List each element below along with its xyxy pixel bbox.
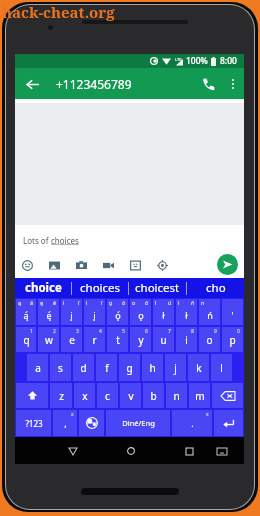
button[interactable]: a [27, 354, 48, 381]
staticText: n [201, 299, 205, 306]
staticText: ą́ [23, 309, 29, 321]
button[interactable]: l [211, 354, 232, 381]
button[interactable]: 8 [176, 327, 197, 352]
button[interactable]: ' [222, 299, 243, 325]
staticText: cho [206, 280, 226, 296]
button[interactable]: Back [64, 442, 82, 460]
button[interactable]: 9 [199, 327, 220, 352]
button[interactable]: 6 [130, 327, 151, 352]
button[interactable]: Enter [214, 410, 243, 436]
button[interactable]: choice [15, 278, 71, 298]
button[interactable]: 1 [16, 327, 36, 352]
staticText: ę́ [46, 309, 52, 321]
button[interactable]: 7 [153, 327, 174, 352]
staticText: p [229, 333, 236, 347]
button[interactable]: Shift [16, 383, 48, 408]
staticText: 7 [168, 328, 171, 335]
button[interactable]: n [166, 383, 187, 408]
staticText: j [174, 361, 177, 375]
button[interactable]: z [50, 383, 72, 408]
staticText: r [92, 333, 97, 347]
button[interactable]: Recent apps [180, 442, 198, 460]
button[interactable]: v [120, 383, 141, 408]
button[interactable]: d [73, 354, 94, 381]
button[interactable]: More options [222, 73, 244, 95]
button[interactable]: choices [72, 278, 128, 298]
button[interactable]: ?123 [16, 410, 51, 436]
button[interactable]: Home [122, 442, 140, 460]
staticText: o [132, 299, 136, 306]
button[interactable]: Location [152, 255, 172, 275]
button[interactable]: choicest [129, 278, 186, 298]
staticText: 9 [214, 328, 217, 335]
button[interactable]: x [53, 410, 77, 436]
button[interactable]: Stickers [125, 255, 145, 275]
staticText: í [78, 299, 80, 306]
staticText: l [220, 361, 223, 375]
staticText: b [150, 389, 157, 403]
button[interactable]: Backspace [212, 383, 243, 408]
button[interactable]: Change language [79, 410, 104, 436]
button[interactable]: Gallery [44, 255, 64, 275]
button[interactable]: x [172, 410, 212, 436]
staticText: Lots of [23, 235, 51, 246]
button[interactable]: ę [38, 299, 59, 325]
button[interactable]: s [50, 354, 71, 381]
button[interactable]: l [153, 299, 174, 325]
button[interactable]: k [188, 354, 209, 381]
button[interactable]: n [199, 299, 220, 325]
staticText: u [160, 333, 167, 347]
button[interactable]: Camera [71, 255, 91, 275]
staticText: +1123456789 [56, 76, 132, 92]
staticText: 0 [237, 328, 240, 335]
staticText: l [178, 299, 180, 306]
staticText: m [195, 389, 205, 403]
staticText: choices [51, 235, 79, 246]
staticText: d [80, 361, 87, 375]
staticText: í [101, 299, 103, 306]
button[interactable]: 5 [107, 327, 128, 352]
button[interactable]: c [97, 383, 118, 408]
button[interactable]: l [176, 299, 197, 325]
staticText: ó [122, 299, 126, 306]
button[interactable]: i [61, 299, 82, 325]
button[interactable]: ą [16, 299, 36, 325]
staticText: 4 [99, 328, 102, 335]
button[interactable]: b [143, 383, 164, 408]
button[interactable]: Send [217, 254, 238, 275]
button[interactable]: Video [98, 255, 118, 275]
button[interactable]: i [84, 299, 105, 325]
staticText: f [105, 361, 109, 375]
staticText: l [155, 299, 157, 306]
button[interactable]: m [189, 383, 210, 408]
button[interactable]: g [119, 354, 140, 381]
button[interactable]: 0 [222, 327, 243, 352]
button[interactable]: cho [187, 278, 244, 298]
staticText: z [59, 389, 64, 403]
button[interactable]: Call [195, 71, 221, 97]
button[interactable]: Hide keyboard [213, 442, 231, 460]
button[interactable]: 3 [61, 327, 82, 352]
staticText: ?123 [25, 418, 43, 429]
button[interactable]: x [74, 383, 95, 408]
staticText: 6 [145, 328, 148, 335]
button[interactable]: o [130, 299, 151, 325]
staticText: ó [145, 299, 149, 306]
button[interactable]: 4 [84, 327, 105, 352]
button[interactable]: Back [21, 73, 43, 95]
button[interactable]: f [96, 354, 117, 381]
staticText: ą [18, 299, 22, 306]
button[interactable]: 2 [38, 327, 59, 352]
staticText: choices [80, 280, 121, 296]
button[interactable]: h [142, 354, 163, 381]
button[interactable]: Diné/Eng [106, 410, 170, 436]
staticText: choice [25, 280, 62, 296]
button[interactable]: j [165, 354, 186, 381]
staticText: x [71, 411, 74, 418]
staticText: x [206, 411, 209, 418]
staticText: 5 [122, 328, 125, 335]
staticText: , [64, 417, 67, 429]
button[interactable]: Emoji [17, 255, 37, 275]
button[interactable]: ǫ [107, 299, 128, 325]
staticText: á [30, 299, 34, 306]
